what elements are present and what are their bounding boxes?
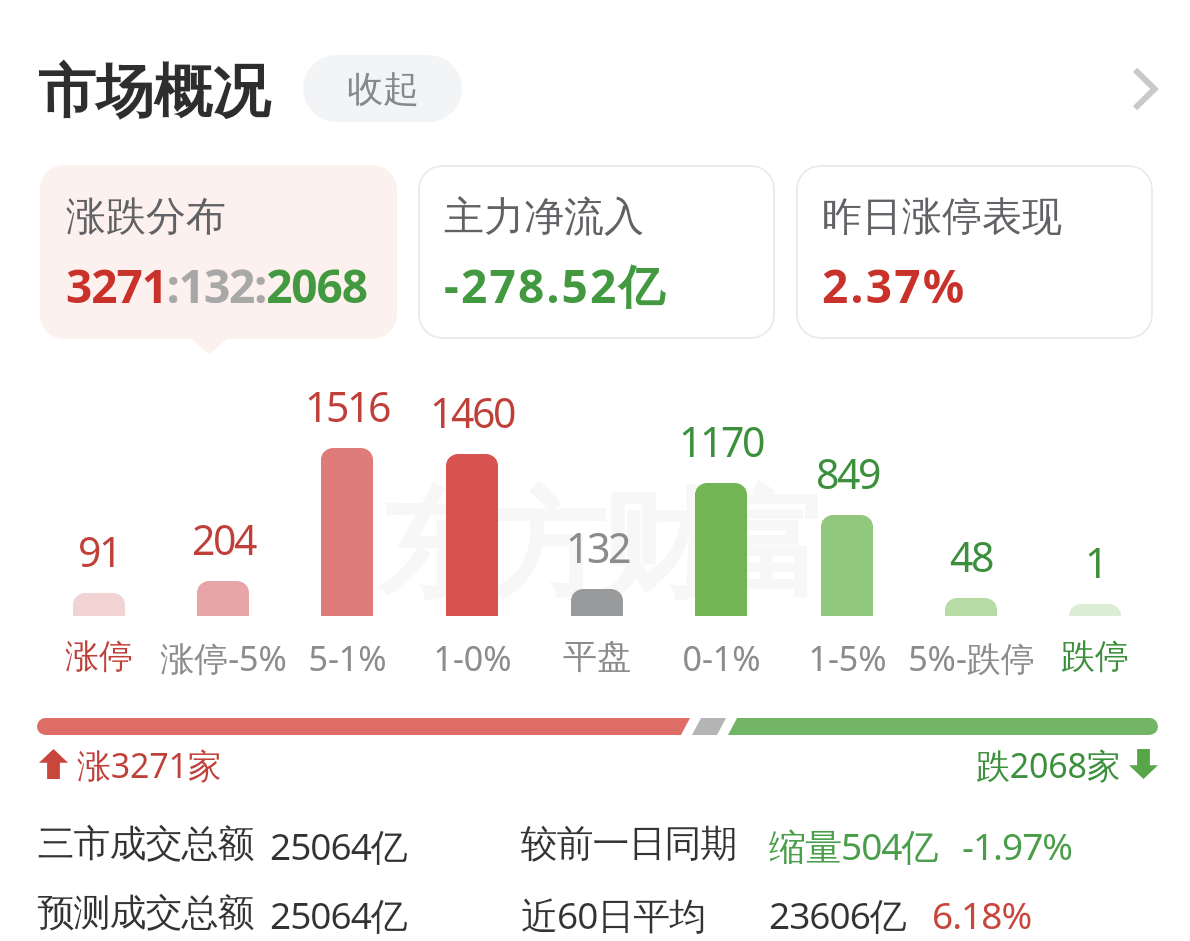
staticText: 市场概况 (39, 54, 271, 127)
staticText: 涨停 (65, 635, 133, 678)
staticText: 6.18% (932, 889, 1032, 939)
button[interactable]: 昨日涨停表现 (796, 165, 1153, 339)
staticText: 2.37% (822, 254, 967, 317)
staticText: -278.52亿 (444, 254, 667, 317)
staticText: 5-1% (308, 635, 387, 681)
staticText: 跌2068家 (976, 742, 1121, 786)
staticText: 平盘 (563, 635, 631, 678)
button[interactable]: 跌2068家 (930, 742, 1158, 786)
staticText: 1516 (305, 378, 389, 434)
staticText: 预测成交总额 (38, 889, 254, 936)
staticText: 48 (950, 528, 992, 584)
staticText: 3271:132:2068 (66, 254, 367, 317)
staticText: 跌停 (1061, 635, 1129, 678)
staticText: 涨停-5% (160, 635, 287, 681)
staticText: 5%-跌停 (908, 635, 1035, 681)
button[interactable]: 收起 (303, 55, 462, 122)
button[interactable]: 主力净流入 (418, 165, 775, 339)
staticText: 市场概况 (39, 54, 271, 127)
button[interactable]: 5-1% 1516 (285, 380, 409, 680)
button[interactable]: 三市成交总额 25064亿 较前一日同期 缩量504亿 -1.97% (30, 812, 1160, 868)
staticText: 较前一日同期 (521, 820, 737, 867)
button[interactable]: 涨3271家 (37, 742, 227, 786)
staticText: 132 (566, 519, 629, 575)
button[interactable]: 跌停 1 (1033, 380, 1157, 680)
staticText: 三市成交总额 (38, 820, 254, 867)
staticText: 1 (1085, 534, 1106, 590)
button[interactable]: 涨跌分布 (40, 165, 397, 339)
button[interactable]: 1-5% 849 (785, 380, 909, 680)
staticText: 91 (78, 523, 120, 579)
staticText: 1-0% (433, 635, 512, 681)
button[interactable]: 平盘 132 (535, 380, 659, 680)
staticText: 1460 (430, 384, 514, 440)
staticText: 昨日涨停表现 (822, 191, 1062, 241)
staticText: 0-1% (682, 635, 761, 681)
staticText: 1-5% (808, 635, 887, 681)
staticText: 涨3271家 (77, 742, 222, 786)
staticText: -1.97% (962, 820, 1073, 870)
staticText: 东方财富 (381, 473, 825, 619)
staticText: 缩量504亿 (769, 820, 938, 871)
staticText: 涨跌分布 (66, 191, 226, 241)
button[interactable]: 0-1% 1170 (659, 380, 783, 680)
button[interactable]: 预测成交总额 25064亿 近60日平均 23606亿 6.18% (30, 881, 1160, 937)
button[interactable]: 5%-跌停 48 (909, 380, 1033, 680)
staticText: 收起 (347, 66, 419, 111)
button[interactable]: Open market overview details (1118, 62, 1172, 116)
staticText: 25064亿 (270, 820, 407, 871)
staticText: 849 (816, 445, 879, 501)
button[interactable]: 1-0% 1460 (410, 380, 534, 680)
staticText: 23606亿 (769, 889, 906, 940)
staticText: 25064亿 (270, 889, 407, 940)
staticText: 近60日平均 (521, 889, 706, 940)
button[interactable]: 涨停 91 (37, 380, 161, 680)
staticText: 主力净流入 (444, 191, 644, 241)
staticText: 1170 (679, 413, 763, 469)
button[interactable]: 涨停-5% 204 (161, 380, 285, 680)
staticText: 204 (192, 511, 255, 567)
